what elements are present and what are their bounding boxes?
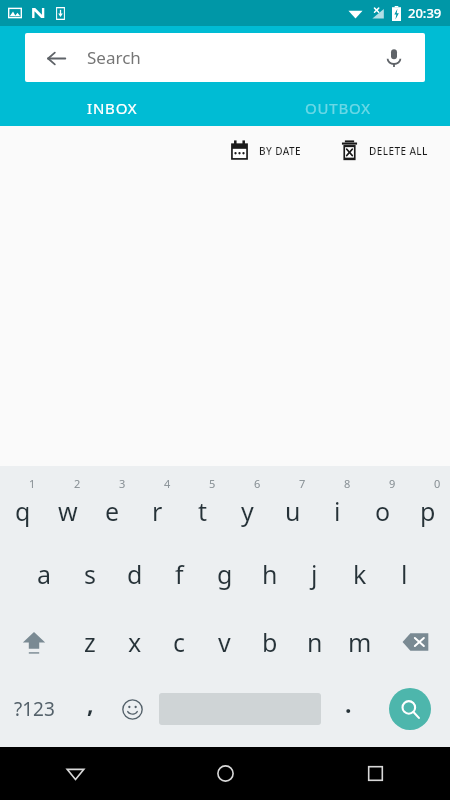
- button[interactable]: 8: [315, 472, 360, 540]
- button[interactable]: s: [67, 540, 112, 608]
- button[interactable]: DELETE ALL: [335, 136, 432, 165]
- button[interactable]: Search: [369, 676, 450, 742]
- staticText: OUTBOX: [305, 98, 371, 118]
- staticText: BY DATE: [259, 144, 301, 158]
- button[interactable]: l: [382, 540, 427, 608]
- staticText: l: [401, 557, 408, 591]
- staticText: .: [345, 688, 352, 719]
- staticText: 6: [254, 476, 261, 491]
- staticText: 4: [164, 476, 171, 491]
- button[interactable]: 5: [180, 472, 225, 540]
- button[interactable]: b: [247, 608, 292, 676]
- button[interactable]: Voice search: [377, 41, 411, 75]
- staticText: k: [353, 557, 367, 591]
- button[interactable]: OUTBOX: [225, 89, 450, 126]
- button[interactable]: 3: [90, 472, 135, 540]
- staticText: a: [37, 557, 52, 591]
- staticText: r: [152, 494, 163, 528]
- button[interactable]: c: [157, 608, 202, 676]
- staticText: u: [285, 494, 301, 528]
- button[interactable]: k: [337, 540, 382, 608]
- button[interactable]: m: [337, 608, 382, 676]
- button[interactable]: .: [327, 676, 369, 742]
- button[interactable]: 0: [405, 472, 450, 540]
- button[interactable]: Recent apps: [300, 747, 450, 800]
- staticText: g: [217, 557, 233, 591]
- button[interactable]: ,: [69, 676, 111, 742]
- staticText: z: [84, 625, 96, 659]
- staticText: d: [127, 557, 143, 591]
- staticText: Search: [87, 46, 141, 69]
- staticText: o: [375, 494, 391, 528]
- button[interactable]: a: [22, 540, 67, 608]
- staticText: i: [334, 494, 341, 528]
- button[interactable]: BY DATE: [225, 136, 305, 165]
- staticText: x: [128, 625, 142, 659]
- staticText: n: [307, 625, 323, 659]
- button[interactable]: d: [112, 540, 157, 608]
- staticText: w: [58, 494, 78, 528]
- staticText: b: [262, 625, 278, 659]
- staticText: m: [348, 625, 372, 659]
- staticText: f: [175, 557, 184, 591]
- staticText: s: [84, 557, 96, 591]
- button[interactable]: z: [67, 608, 112, 676]
- staticText: 3: [119, 476, 126, 491]
- staticText: 8: [344, 476, 351, 491]
- staticText: 7: [299, 476, 306, 491]
- staticText: c: [173, 625, 186, 659]
- staticText: 2: [74, 476, 81, 491]
- staticText: v: [218, 625, 231, 659]
- button[interactable]: ?123: [0, 676, 69, 742]
- staticText: 9: [389, 476, 396, 491]
- button[interactable]: Space: [153, 676, 327, 742]
- button[interactable]: Back: [0, 747, 150, 800]
- staticText: ?123: [14, 696, 55, 722]
- button[interactable]: Emoji: [111, 676, 153, 742]
- button[interactable]: 6: [225, 472, 270, 540]
- button[interactable]: INBOX: [0, 89, 225, 126]
- button[interactable]: Home: [150, 747, 300, 800]
- button[interactable]: j: [292, 540, 337, 608]
- button[interactable]: v: [202, 608, 247, 676]
- staticText: 5: [209, 476, 216, 491]
- staticText: DELETE ALL: [369, 144, 428, 158]
- staticText: 1: [29, 476, 36, 491]
- staticText: INBOX: [87, 98, 138, 118]
- button[interactable]: x: [112, 608, 157, 676]
- staticText: j: [311, 557, 318, 591]
- button[interactable]: Back: [39, 41, 73, 75]
- staticText: y: [241, 494, 254, 528]
- button[interactable]: Shift: [0, 608, 67, 676]
- staticText: t: [198, 494, 208, 528]
- button[interactable]: Backspace: [382, 608, 450, 676]
- button[interactable]: 9: [360, 472, 405, 540]
- staticText: h: [262, 557, 278, 591]
- button[interactable]: 1: [0, 472, 45, 540]
- staticText: q: [15, 494, 31, 528]
- button[interactable]: 2: [45, 472, 90, 540]
- staticText: ,: [87, 688, 94, 719]
- button[interactable]: 4: [135, 472, 180, 540]
- button[interactable]: g: [202, 540, 247, 608]
- button[interactable]: n: [292, 608, 337, 676]
- button[interactable]: f: [157, 540, 202, 608]
- button[interactable]: h: [247, 540, 292, 608]
- staticText: 20:39: [408, 4, 442, 22]
- button[interactable]: Back: [25, 33, 425, 82]
- staticText: e: [105, 494, 120, 528]
- staticText: p: [420, 494, 436, 528]
- button[interactable]: 7: [270, 472, 315, 540]
- staticText: 0: [434, 476, 441, 491]
